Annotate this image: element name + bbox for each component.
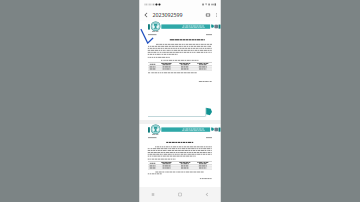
button[interactable]: Back [139,9,152,21]
button[interactable]: Scan document [203,9,212,21]
button[interactable]: More options [212,9,220,21]
button[interactable]: Back [193,187,220,202]
button[interactable]: Home [166,187,193,202]
staticText: 2023092599 [152,11,182,19]
button[interactable]: Recent apps [139,187,166,202]
